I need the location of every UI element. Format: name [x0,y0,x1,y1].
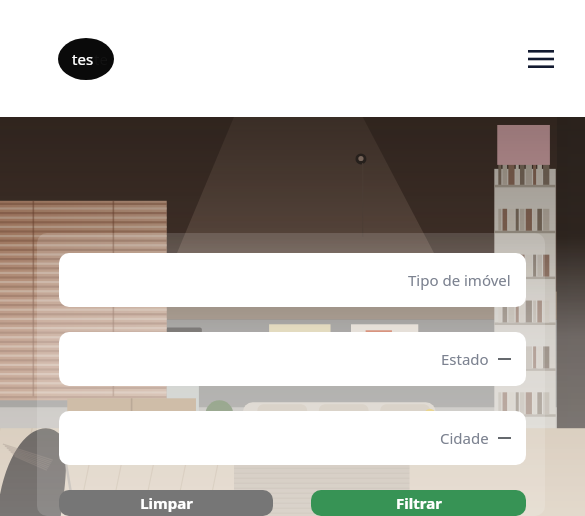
button[interactable]: tes [58,38,114,80]
staticText: Tipo de imóvel [408,270,511,290]
staticText: tes [72,49,94,69]
staticText: Cidade [440,428,489,448]
button[interactable]: Estado [59,332,526,386]
staticText: Limpar [140,493,193,513]
button[interactable]: Tipo de imóvel [59,253,526,307]
staticText: Estado [441,349,489,369]
button[interactable]: Menu [524,42,558,76]
button[interactable]: Cidade [59,411,526,465]
button[interactable]: Limpar [59,490,273,516]
button[interactable]: Filtrar [311,490,526,516]
staticText: Filtrar [396,493,442,513]
